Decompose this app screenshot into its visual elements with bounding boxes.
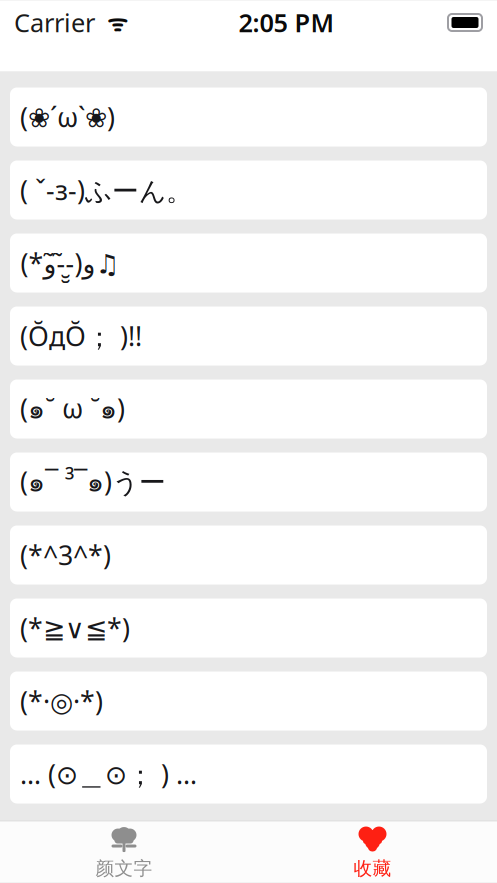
button[interactable]: (*·◎·*) <box>10 671 487 730</box>
staticText: (*·◎·*) <box>20 683 103 719</box>
button[interactable]: ( ˇ-з-)ふーん。 <box>10 160 487 219</box>
staticText: (ŎдŎ； )!! <box>20 318 142 354</box>
staticText: … (⊙＿⊙； ) … <box>20 756 197 792</box>
button[interactable]: … (⊙＿⊙； ) … <box>10 744 487 803</box>
staticText: ( ˇ-з-)ふーん。 <box>20 172 193 208</box>
button[interactable]: 收藏 <box>248 821 497 882</box>
staticText: (*^3^*) <box>20 537 111 573</box>
button[interactable]: 颜文字 <box>0 821 248 882</box>
staticText: ᯤ <box>95 7 128 37</box>
button[interactable]: (*^3^*) <box>10 525 487 584</box>
staticText: (❀´ω`❀) <box>20 99 115 135</box>
staticText: 颜文字 <box>95 857 152 880</box>
staticText: 2:05 PM <box>238 6 334 39</box>
button[interactable]: (๑˘ ω ˘๑) <box>10 379 487 438</box>
button[interactable]: ♫و(-̮̮̃-̃و*) <box>10 233 487 292</box>
staticText: 收藏 <box>353 857 391 880</box>
staticText: (*≧∨≦*) <box>20 610 130 646</box>
staticText: (๑˘ ω ˘๑) <box>20 388 125 430</box>
button[interactable]: (*≧∨≦*) <box>10 598 487 657</box>
staticText: Carrier <box>14 6 95 39</box>
button[interactable]: (ŎдŎ； )!! <box>10 306 487 365</box>
staticText: (๑¯ ³¯๑)うー <box>20 461 166 503</box>
staticText: ♫و(-̮̮̃-̃و*) <box>20 245 119 281</box>
button[interactable]: (❀´ω`❀) <box>10 87 487 146</box>
button[interactable]: (๑¯ ³¯๑)うー <box>10 452 487 511</box>
